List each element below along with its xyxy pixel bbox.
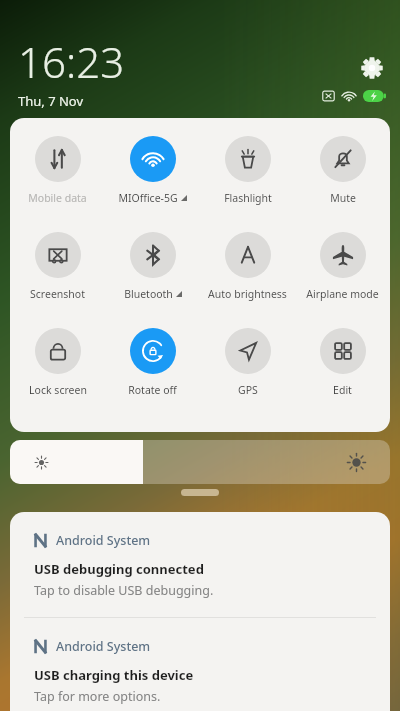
button[interactable]: Flashlight: [200, 130, 295, 226]
button[interactable]: Settings: [358, 54, 386, 82]
staticText: Mute: [330, 191, 356, 205]
staticText: Tap for more options.: [34, 688, 161, 705]
button[interactable]: Expand: [181, 489, 219, 496]
button[interactable]: Mute: [295, 130, 390, 226]
button[interactable]: Android System: [10, 618, 390, 711]
staticText: Auto brightness: [208, 287, 287, 301]
button[interactable]: Android System: [10, 512, 390, 617]
button[interactable]: Mobile data: [10, 130, 105, 226]
staticText: Flashlight: [224, 191, 272, 205]
button[interactable]: Bluetooth: [105, 226, 200, 322]
staticText: Tap to disable USB debugging.: [34, 582, 214, 599]
staticText: Thu, 7 Nov: [18, 92, 84, 110]
button[interactable]: Edit: [295, 322, 390, 418]
button[interactable]: Lock screen: [10, 322, 105, 418]
staticText: Android System: [56, 638, 151, 655]
staticText: GPS: [238, 383, 258, 397]
button[interactable]: Brightness: [10, 440, 390, 484]
staticText: Mobile data: [28, 191, 87, 205]
staticText: Rotate off: [128, 383, 177, 397]
button[interactable]: Screenshot: [10, 226, 105, 322]
staticText: 16:23: [18, 33, 125, 90]
button[interactable]: Rotate off: [105, 322, 200, 418]
staticText: Screenshot: [30, 287, 85, 301]
button[interactable]: MIOffice-5G: [105, 130, 200, 226]
staticText: USB charging this device: [34, 666, 194, 684]
button[interactable]: GPS: [200, 322, 295, 418]
staticText: Android System: [56, 532, 151, 549]
button[interactable]: Airplane mode: [295, 226, 390, 322]
staticText: Edit: [333, 383, 352, 397]
staticText: Bluetooth: [124, 287, 173, 301]
staticText: MIOffice-5G: [118, 191, 178, 205]
button[interactable]: Auto brightness: [200, 226, 295, 322]
staticText: Lock screen: [29, 383, 87, 397]
staticText: Airplane mode: [306, 287, 379, 301]
staticText: USB debugging connected: [34, 560, 204, 578]
